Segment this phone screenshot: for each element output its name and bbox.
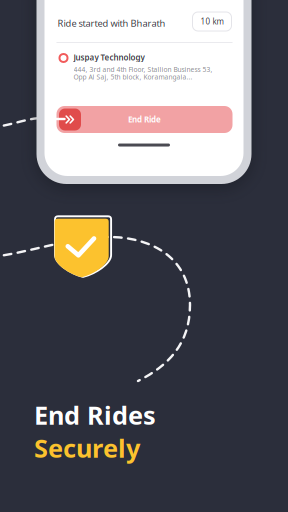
staticText: 444, 3rd and 4th Floor, Stallion Busines… xyxy=(73,65,212,74)
staticText: Ride started with Bharath xyxy=(57,17,165,29)
staticText: End Ride xyxy=(128,114,161,125)
button[interactable]: End Ride xyxy=(56,106,232,133)
staticText: Securely xyxy=(34,431,140,465)
staticText: 10 km xyxy=(200,16,223,27)
staticText: Opp Al Saj, 5th block, Koramangala... xyxy=(73,72,192,81)
staticText: End Rides xyxy=(34,398,156,432)
staticText: Juspay Technology xyxy=(73,52,144,63)
